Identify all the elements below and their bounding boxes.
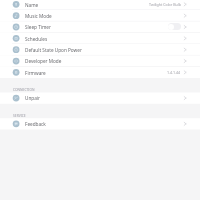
staticText: SERVICE [13, 113, 26, 117]
staticText: 1.4.1.44 [167, 70, 181, 75]
staticText: Developer Mode [25, 58, 62, 64]
button[interactable]: Sleep Timer [0, 21, 200, 32]
button[interactable]: Default State Upon Power [0, 44, 200, 55]
button[interactable]: Firmware [0, 67, 200, 78]
staticText: Feedback [25, 121, 46, 127]
staticText: Sleep Timer [25, 24, 51, 30]
button[interactable]: Name [0, 0, 200, 10]
button[interactable]: Unpair [0, 92, 200, 103]
staticText: Unpair [25, 95, 40, 101]
staticText: Music Mode [25, 13, 52, 19]
button[interactable]: Sleep Timer toggle [168, 23, 181, 30]
button[interactable]: Schedules [0, 33, 200, 44]
button[interactable]: Music Mode [0, 10, 200, 21]
button[interactable]: Feedback [0, 118, 200, 129]
staticText: Schedules [25, 36, 48, 42]
staticText: Twilight Color Bulb [149, 2, 181, 7]
staticText: Default State Upon Power [25, 47, 82, 53]
staticText: CONNECTION [13, 87, 35, 91]
button[interactable]: Developer Mode [0, 55, 200, 66]
staticText: Firmware [25, 70, 46, 76]
staticText: Name [25, 2, 39, 8]
